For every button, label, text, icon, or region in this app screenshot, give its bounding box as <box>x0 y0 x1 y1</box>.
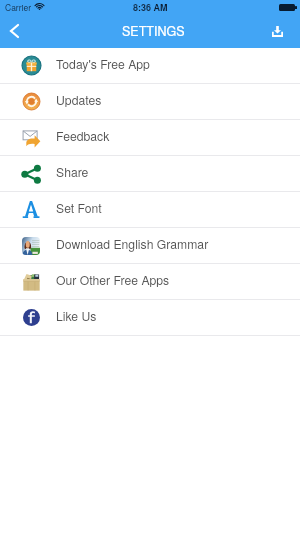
staticText: Download English Grammar <box>56 235 209 252</box>
button[interactable]: Set Font <box>0 192 300 228</box>
staticText: Set Font <box>56 199 102 216</box>
button[interactable]: Like Us <box>0 300 300 336</box>
staticText: Updates <box>56 91 102 108</box>
button[interactable]: Updates <box>0 84 300 120</box>
staticText: 8:36 AM <box>133 1 168 14</box>
button[interactable]: Download <box>254 16 300 48</box>
button[interactable]: Feedback <box>0 120 300 156</box>
staticText: SETTINGS <box>122 22 185 40</box>
staticText: Like Us <box>56 307 97 324</box>
button[interactable]: Download English Grammar <box>0 228 300 264</box>
button[interactable]: Our Other Free Apps <box>0 264 300 300</box>
staticText: Our Other Free Apps <box>56 271 170 288</box>
staticText: Share <box>56 163 89 180</box>
button[interactable]: Share <box>0 156 300 192</box>
staticText: Today's Free App <box>56 55 150 72</box>
button[interactable]: Back <box>0 16 28 48</box>
staticText: Feedback <box>56 127 110 144</box>
button[interactable]: Today's Free App <box>0 48 300 84</box>
staticText: Carrier <box>5 1 31 13</box>
